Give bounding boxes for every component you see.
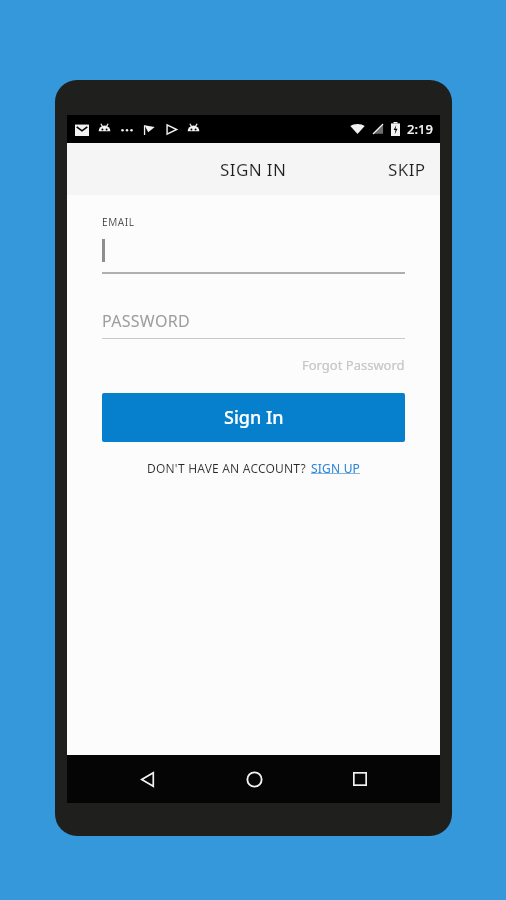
staticText: SIGN UP <box>311 460 361 476</box>
button[interactable]: Recent apps <box>334 755 386 803</box>
staticText: SIGN IN <box>220 158 287 181</box>
button[interactable]: Back <box>121 755 173 803</box>
button[interactable]: Home <box>228 755 280 803</box>
staticText: Sign In <box>224 405 284 430</box>
staticText: 2:19 <box>407 120 433 138</box>
staticText: SKIP <box>388 158 426 181</box>
button[interactable]: Forgot Password <box>302 353 405 377</box>
staticText: Forgot Password <box>302 356 405 374</box>
button[interactable]: PASSWORD <box>102 304 405 338</box>
button[interactable] <box>102 229 405 272</box>
button[interactable]: SIGN UP <box>311 460 361 476</box>
staticText: PASSWORD <box>102 310 190 332</box>
staticText: DON'T HAVE AN ACCOUNT? <box>147 460 306 476</box>
staticText: EMAIL <box>102 215 135 229</box>
button[interactable]: SKIP <box>374 146 440 193</box>
button[interactable]: Sign In <box>102 393 405 442</box>
